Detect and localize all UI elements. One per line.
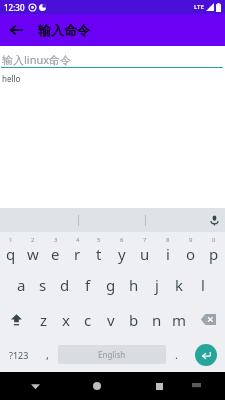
staticText: t (96, 244, 102, 264)
staticText: j (155, 275, 159, 295)
staticText: c (84, 310, 92, 330)
button[interactable]: ?123 (0, 337, 37, 372)
staticText: 12:30 (4, 2, 25, 13)
staticText: 输入命令 (38, 22, 90, 38)
button[interactable]: 1 (0, 232, 22, 267)
button[interactable]: a (10, 267, 32, 302)
staticText: g (106, 275, 116, 295)
button[interactable]: h (122, 267, 145, 302)
staticText: 8 (166, 236, 170, 244)
button[interactable]: l (191, 267, 214, 302)
button[interactable]: v (99, 302, 122, 337)
staticText: r (74, 244, 81, 264)
button[interactable]: 7 (133, 232, 156, 267)
staticText: hello (2, 73, 21, 84)
staticText: q (6, 244, 16, 264)
button[interactable]: j (145, 267, 168, 302)
staticText: v (107, 310, 115, 330)
button[interactable]: 输入linux命令 (2, 51, 225, 67)
staticText: u (140, 244, 150, 264)
button[interactable]: k (168, 267, 191, 302)
button[interactable]: Back (22, 373, 48, 399)
button[interactable]: s (32, 267, 54, 302)
staticText: a (17, 275, 26, 295)
staticText: s (39, 275, 47, 295)
staticText: 9 (189, 236, 193, 244)
button[interactable]: English (58, 345, 166, 364)
staticText: English (98, 349, 126, 360)
staticText: 2 (31, 236, 35, 244)
staticText: f (85, 275, 91, 295)
button[interactable]: 2 (22, 232, 44, 267)
button[interactable]: n (145, 302, 168, 337)
staticText: ?123 (9, 349, 29, 361)
staticText: 输入linux命令 (2, 52, 72, 67)
staticText: p (209, 244, 219, 264)
button[interactable]: Backspace (191, 302, 225, 337)
staticText: z (40, 310, 48, 330)
button[interactable]: , (37, 337, 58, 372)
button[interactable]: g (99, 267, 122, 302)
staticText: o (186, 244, 196, 264)
staticText: 0 (212, 236, 216, 244)
staticText: m (172, 310, 187, 330)
button[interactable]: Voice input (203, 209, 225, 231)
staticText: y (118, 244, 126, 264)
staticText: n (152, 310, 162, 330)
button[interactable]: c (77, 302, 99, 337)
button[interactable]: 0 (202, 232, 225, 267)
staticText: . (175, 347, 178, 362)
staticText: d (60, 275, 70, 295)
button[interactable]: z (33, 302, 55, 337)
staticText: k (175, 275, 184, 295)
staticText: l (201, 275, 205, 295)
button[interactable]: b (122, 302, 145, 337)
staticText: w (27, 244, 39, 264)
button[interactable]: Hide keyboard (183, 373, 209, 399)
button[interactable]: 9 (179, 232, 202, 267)
staticText: x (62, 310, 70, 330)
staticText: 5 (97, 236, 101, 244)
button[interactable]: Home (84, 373, 110, 399)
staticText: 6 (120, 236, 124, 244)
button[interactable]: Back (0, 14, 32, 46)
staticText: i (166, 244, 170, 264)
button[interactable]: x (55, 302, 77, 337)
staticText: LTE (194, 3, 204, 11)
button[interactable]: 3 (44, 232, 66, 267)
button[interactable]: Shift (0, 302, 33, 337)
button[interactable]: 4 (66, 232, 88, 267)
staticText: e (51, 244, 60, 264)
button[interactable]: Recent apps (146, 373, 172, 399)
staticText: h (129, 275, 139, 295)
staticText: , (46, 347, 49, 362)
button[interactable]: 8 (156, 232, 179, 267)
staticText: 1 (9, 236, 13, 244)
button[interactable]: m (168, 302, 191, 337)
button[interactable]: 5 (88, 232, 110, 267)
button[interactable]: f (76, 267, 99, 302)
button[interactable]: 6 (110, 232, 133, 267)
button[interactable]: Enter (187, 337, 225, 372)
staticText: b (129, 310, 139, 330)
button[interactable]: . (166, 337, 187, 372)
button[interactable]: d (54, 267, 76, 302)
staticText: 3 (54, 236, 58, 244)
staticText: 7 (143, 236, 147, 244)
staticText: 4 (76, 236, 80, 244)
